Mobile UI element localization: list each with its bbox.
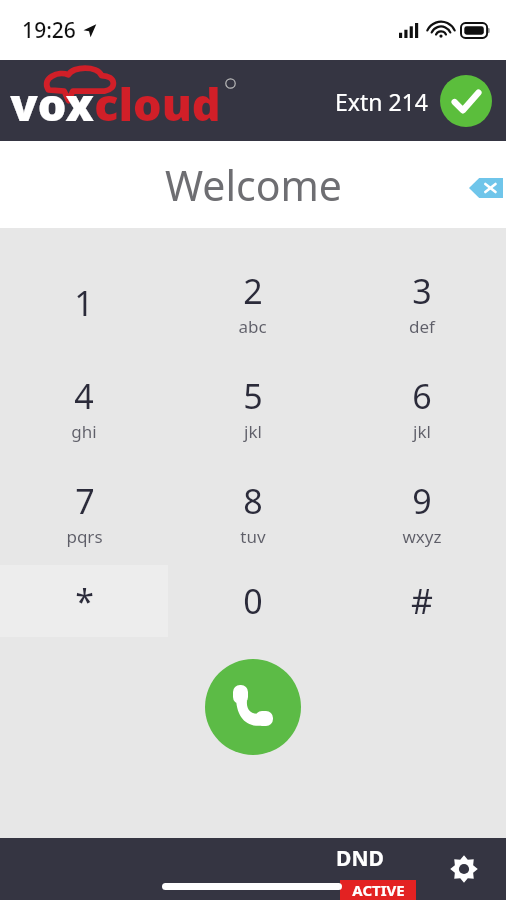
staticText: * [75,578,94,624]
button[interactable]: # [337,565,506,637]
staticText: Extn 214 [335,86,428,117]
staticText: 1 [74,280,94,326]
button[interactable]: 8 [168,460,337,565]
staticText: Welcome [165,157,342,213]
staticText: vox [10,73,94,134]
staticText: wxyz [402,525,442,548]
staticText: 8 [243,478,263,524]
staticText: 3 [412,268,432,314]
button[interactable]: vox [6,64,246,138]
button[interactable]: DND [336,844,384,873]
button[interactable]: 7 [0,460,168,565]
staticText: 19:26 [22,16,76,45]
staticText: tuv [240,525,266,548]
staticText: 7 [75,478,95,524]
staticText: 4 [74,373,94,419]
staticText: 6 [412,373,432,419]
staticText: jkl [413,420,431,443]
button[interactable]: Extn 214 [335,75,492,127]
button[interactable]: 3 [337,250,506,355]
button[interactable]: Call [205,659,301,755]
button[interactable]: 5 [168,355,337,460]
button[interactable]: * [0,565,168,637]
staticText: 2 [243,268,263,314]
button[interactable]: 4 [0,355,168,460]
button[interactable]: 9 [337,460,506,565]
staticText: 9 [412,478,432,524]
staticText: cloud [94,73,221,134]
staticText: def [409,315,435,338]
staticText: # [411,578,433,624]
button[interactable]: Settings [442,847,486,891]
staticText: 5 [243,373,263,419]
staticText: jkl [244,420,262,443]
staticText: ACTIVE [352,880,405,900]
staticText: DND [336,844,384,873]
staticText: abc [238,315,267,338]
button[interactable]: 1 [0,250,168,355]
button[interactable]: 2 [168,250,337,355]
staticText: ghi [71,420,97,443]
button[interactable]: 6 [337,355,506,460]
staticText: 0 [243,578,263,624]
staticText: pqrs [66,525,103,548]
button[interactable]: Backspace [466,173,506,203]
button[interactable]: 0 [168,565,337,637]
other: Registered [440,75,492,127]
